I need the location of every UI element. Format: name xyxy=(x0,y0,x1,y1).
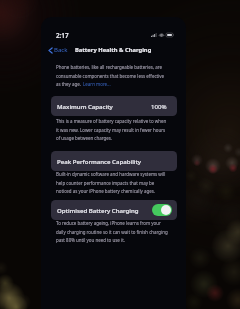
button[interactable]: Optimised Battery Charging xyxy=(51,200,177,220)
staticText: 100% xyxy=(151,102,167,110)
staticText: Back xyxy=(54,46,68,54)
button[interactable]: Optimised Battery Charging xyxy=(152,204,172,216)
other: Back xyxy=(48,47,53,54)
staticText: noticed as your iPhone battery chemicall… xyxy=(56,188,155,194)
staticText: Built-in dynamic software and hardware s… xyxy=(56,171,166,177)
staticText: help counter performance impacts that ma… xyxy=(56,180,155,186)
staticText: This is a measure of battery capacity re… xyxy=(56,118,167,124)
staticText: of usage between charges. xyxy=(56,135,113,141)
button[interactable]: Peak Performance Capability xyxy=(51,151,177,171)
staticText: it was new. Lower capacity may result in… xyxy=(56,127,166,133)
staticText: Peak Performance Capability xyxy=(57,157,141,165)
staticText: Maximum Capacity xyxy=(57,102,113,110)
staticText: 2:17 xyxy=(56,31,69,40)
staticText: Battery Health & Charging xyxy=(75,46,152,54)
staticText: To reduce battery ageing, iPhone learns … xyxy=(56,220,161,226)
staticText: past 80% until you need to use it. xyxy=(56,237,125,243)
button[interactable]: Maximum Capacity xyxy=(51,96,177,116)
button[interactable]: Learn more... xyxy=(83,81,111,87)
staticText: Phone batteries, like all rechargeable b… xyxy=(56,64,162,70)
staticText: Optimised Battery Charging xyxy=(57,206,139,214)
staticText: daily charging routine so it can wait to… xyxy=(56,229,168,235)
staticText: consumable components that become less e… xyxy=(56,73,165,79)
staticText: as they age. xyxy=(56,81,83,87)
button[interactable]: Back xyxy=(48,46,68,54)
